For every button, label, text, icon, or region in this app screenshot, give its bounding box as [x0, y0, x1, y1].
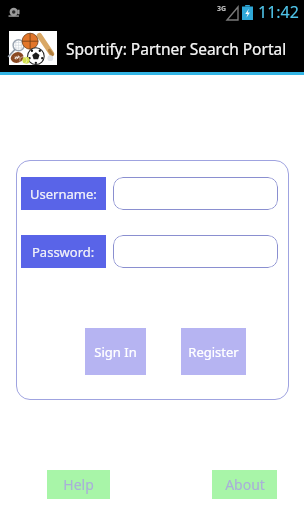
button[interactable]: Password: — [113, 235, 278, 268]
button[interactable]: Password: — [21, 235, 106, 268]
staticText: 3G — [217, 4, 227, 14]
button[interactable]: Help — [47, 470, 110, 499]
staticText: Sign In — [94, 343, 137, 361]
staticText: Username: — [30, 185, 97, 203]
button[interactable]: Sign In — [85, 328, 146, 375]
button[interactable]: About — [212, 470, 277, 499]
button[interactable]: Username: — [21, 177, 106, 210]
staticText: Register — [188, 343, 239, 361]
staticText: Sportify: Partner Search Portal — [66, 38, 287, 59]
staticText: About — [225, 475, 265, 494]
staticText: 11:42 — [258, 1, 299, 23]
staticText: Help — [63, 475, 94, 494]
button[interactable]: Username: — [113, 177, 278, 210]
staticText: Password: — [32, 243, 95, 261]
button[interactable]: Register — [181, 328, 246, 375]
other: App icon — [9, 31, 57, 65]
